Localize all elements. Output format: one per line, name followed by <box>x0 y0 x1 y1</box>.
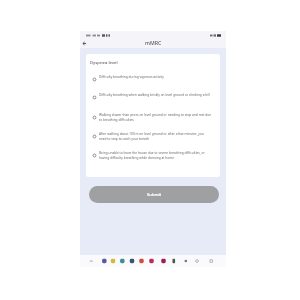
button[interactable]: Walking slower than peers on level groun… <box>90 108 216 126</box>
button[interactable]: Difficulty breathing when walking briskl… <box>90 88 216 106</box>
staticText: Dyspnea level <box>90 60 118 66</box>
button[interactable]: Difficulty breathing during vigorous act… <box>90 70 216 88</box>
staticText: Difficulty breathing when walking briskl… <box>99 93 212 97</box>
button[interactable]: Back <box>81 40 88 47</box>
button[interactable]: Being unable to leave the house due to s… <box>90 146 216 164</box>
staticText: Walking slower than peers on level groun… <box>99 113 212 122</box>
button[interactable]: After walking about 100 m on level groun… <box>90 127 216 145</box>
button[interactable]: Submit <box>89 186 219 203</box>
staticText: After walking about 100 m on level groun… <box>99 132 212 141</box>
staticText: Being unable to leave the house due to s… <box>99 151 212 160</box>
staticText: Submit <box>147 192 162 198</box>
staticText: Difficulty breathing during vigorous act… <box>99 75 212 79</box>
staticText: mMRC <box>145 39 162 46</box>
